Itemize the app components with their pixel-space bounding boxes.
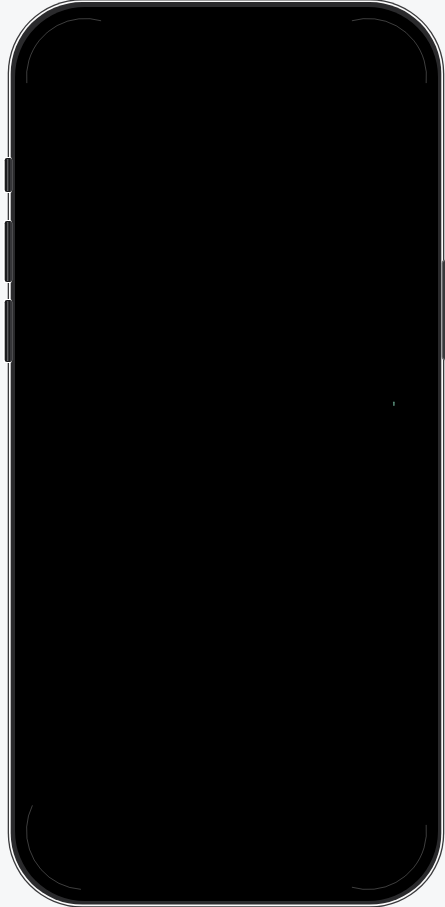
button[interactable]: App content [15,7,438,901]
